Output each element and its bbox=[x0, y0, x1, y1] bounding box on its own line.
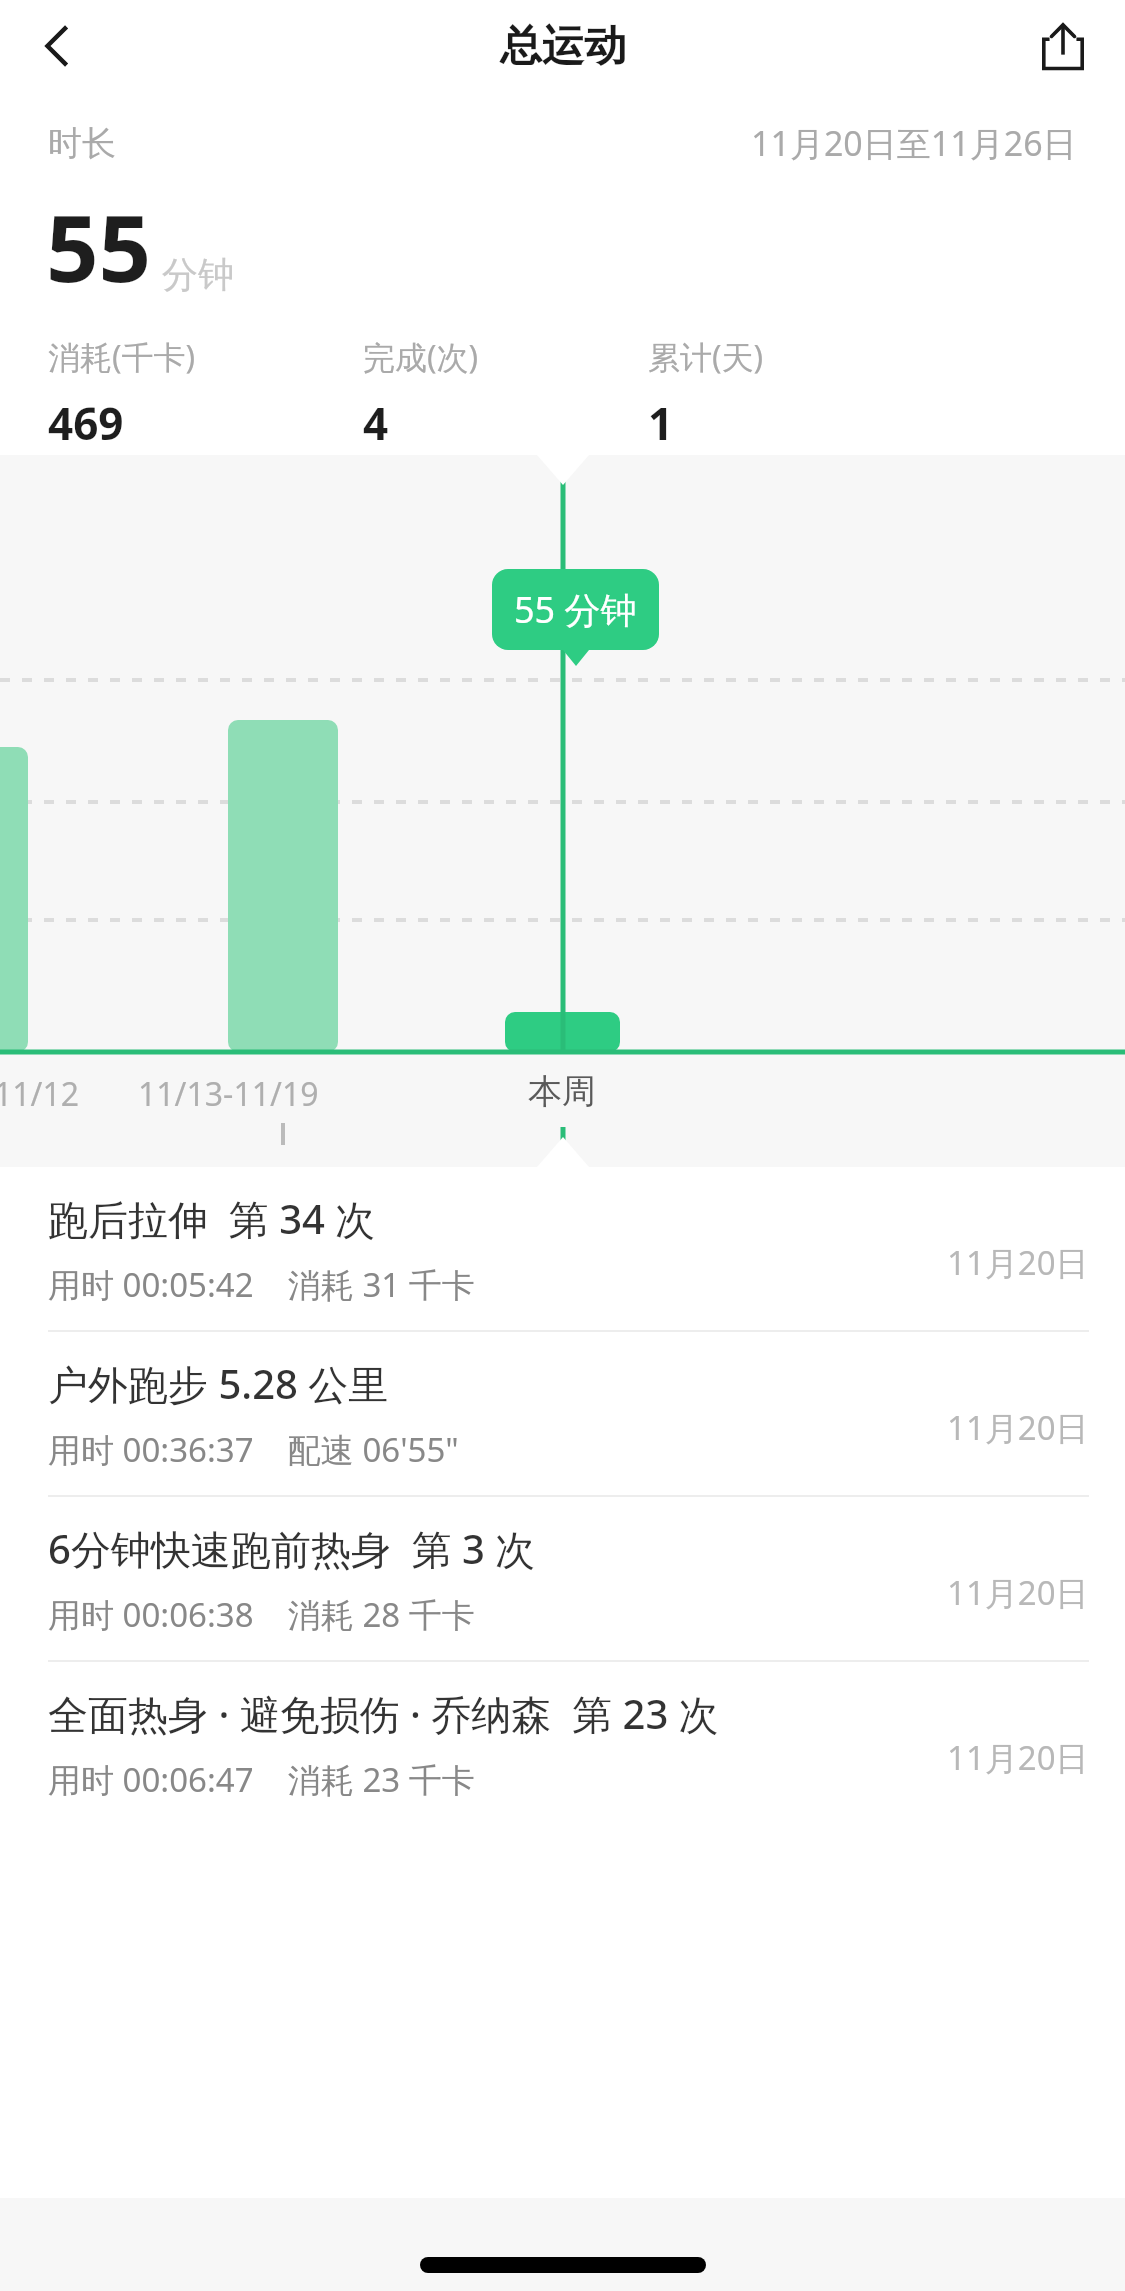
staticText: 本周 bbox=[528, 1070, 596, 1113]
button[interactable]: 55 分钟 bbox=[492, 569, 659, 650]
button[interactable]: 6分钟快速跑前热身 第 3 次 bbox=[0, 1497, 1125, 1660]
staticText: 11月20日 bbox=[947, 1735, 1089, 1780]
staticText: 全面热身 · 避免损伤 · 乔纳森 第 23 次 bbox=[48, 1686, 719, 1741]
staticText: 11月20日至11月26日 bbox=[751, 120, 1077, 166]
button[interactable]: 全面热身 · 避免损伤 · 乔纳森 第 23 次 bbox=[0, 1662, 1125, 1825]
staticText: 户外跑步 5.28 公里 bbox=[48, 1356, 389, 1411]
staticText: 11月20日 bbox=[947, 1405, 1089, 1450]
staticText: 55 分钟 bbox=[514, 585, 637, 634]
staticText: 用时 00:06:38 消耗 28 千卡 bbox=[48, 1592, 475, 1637]
button[interactable]: Back bbox=[14, 2, 102, 90]
staticText: 消耗(千卡) bbox=[48, 335, 196, 379]
button[interactable]: 跑后拉伸 第 34 次 bbox=[0, 1167, 1125, 1330]
staticText: 1 bbox=[648, 393, 674, 453]
staticText: 跑后拉伸 第 34 次 bbox=[48, 1191, 376, 1246]
button[interactable]: Share bbox=[1019, 2, 1107, 90]
staticText: 11/13-11/19 bbox=[138, 1072, 319, 1116]
staticText: 完成(次) bbox=[363, 335, 479, 379]
staticText: 55 bbox=[46, 184, 152, 309]
staticText: 6分钟快速跑前热身 第 3 次 bbox=[48, 1521, 536, 1576]
staticText: 469 bbox=[48, 393, 124, 453]
staticText: 11月20日 bbox=[947, 1570, 1089, 1615]
staticText: 分钟 bbox=[162, 252, 234, 297]
staticText: 4 bbox=[363, 393, 389, 453]
staticText: 11月20日 bbox=[947, 1240, 1089, 1285]
staticText: 用时 00:05:42 消耗 31 千卡 bbox=[48, 1262, 475, 1307]
staticText: 累计(天) bbox=[648, 335, 764, 379]
staticText: 11/12 bbox=[0, 1072, 80, 1116]
staticText: 用时 00:36:37 配速 06'55" bbox=[48, 1427, 459, 1472]
staticText: 用时 00:06:47 消耗 23 千卡 bbox=[48, 1757, 475, 1802]
staticText: 时长 bbox=[48, 122, 116, 165]
staticText: 总运动 bbox=[500, 20, 626, 73]
button[interactable]: 户外跑步 5.28 公里 bbox=[0, 1332, 1125, 1495]
